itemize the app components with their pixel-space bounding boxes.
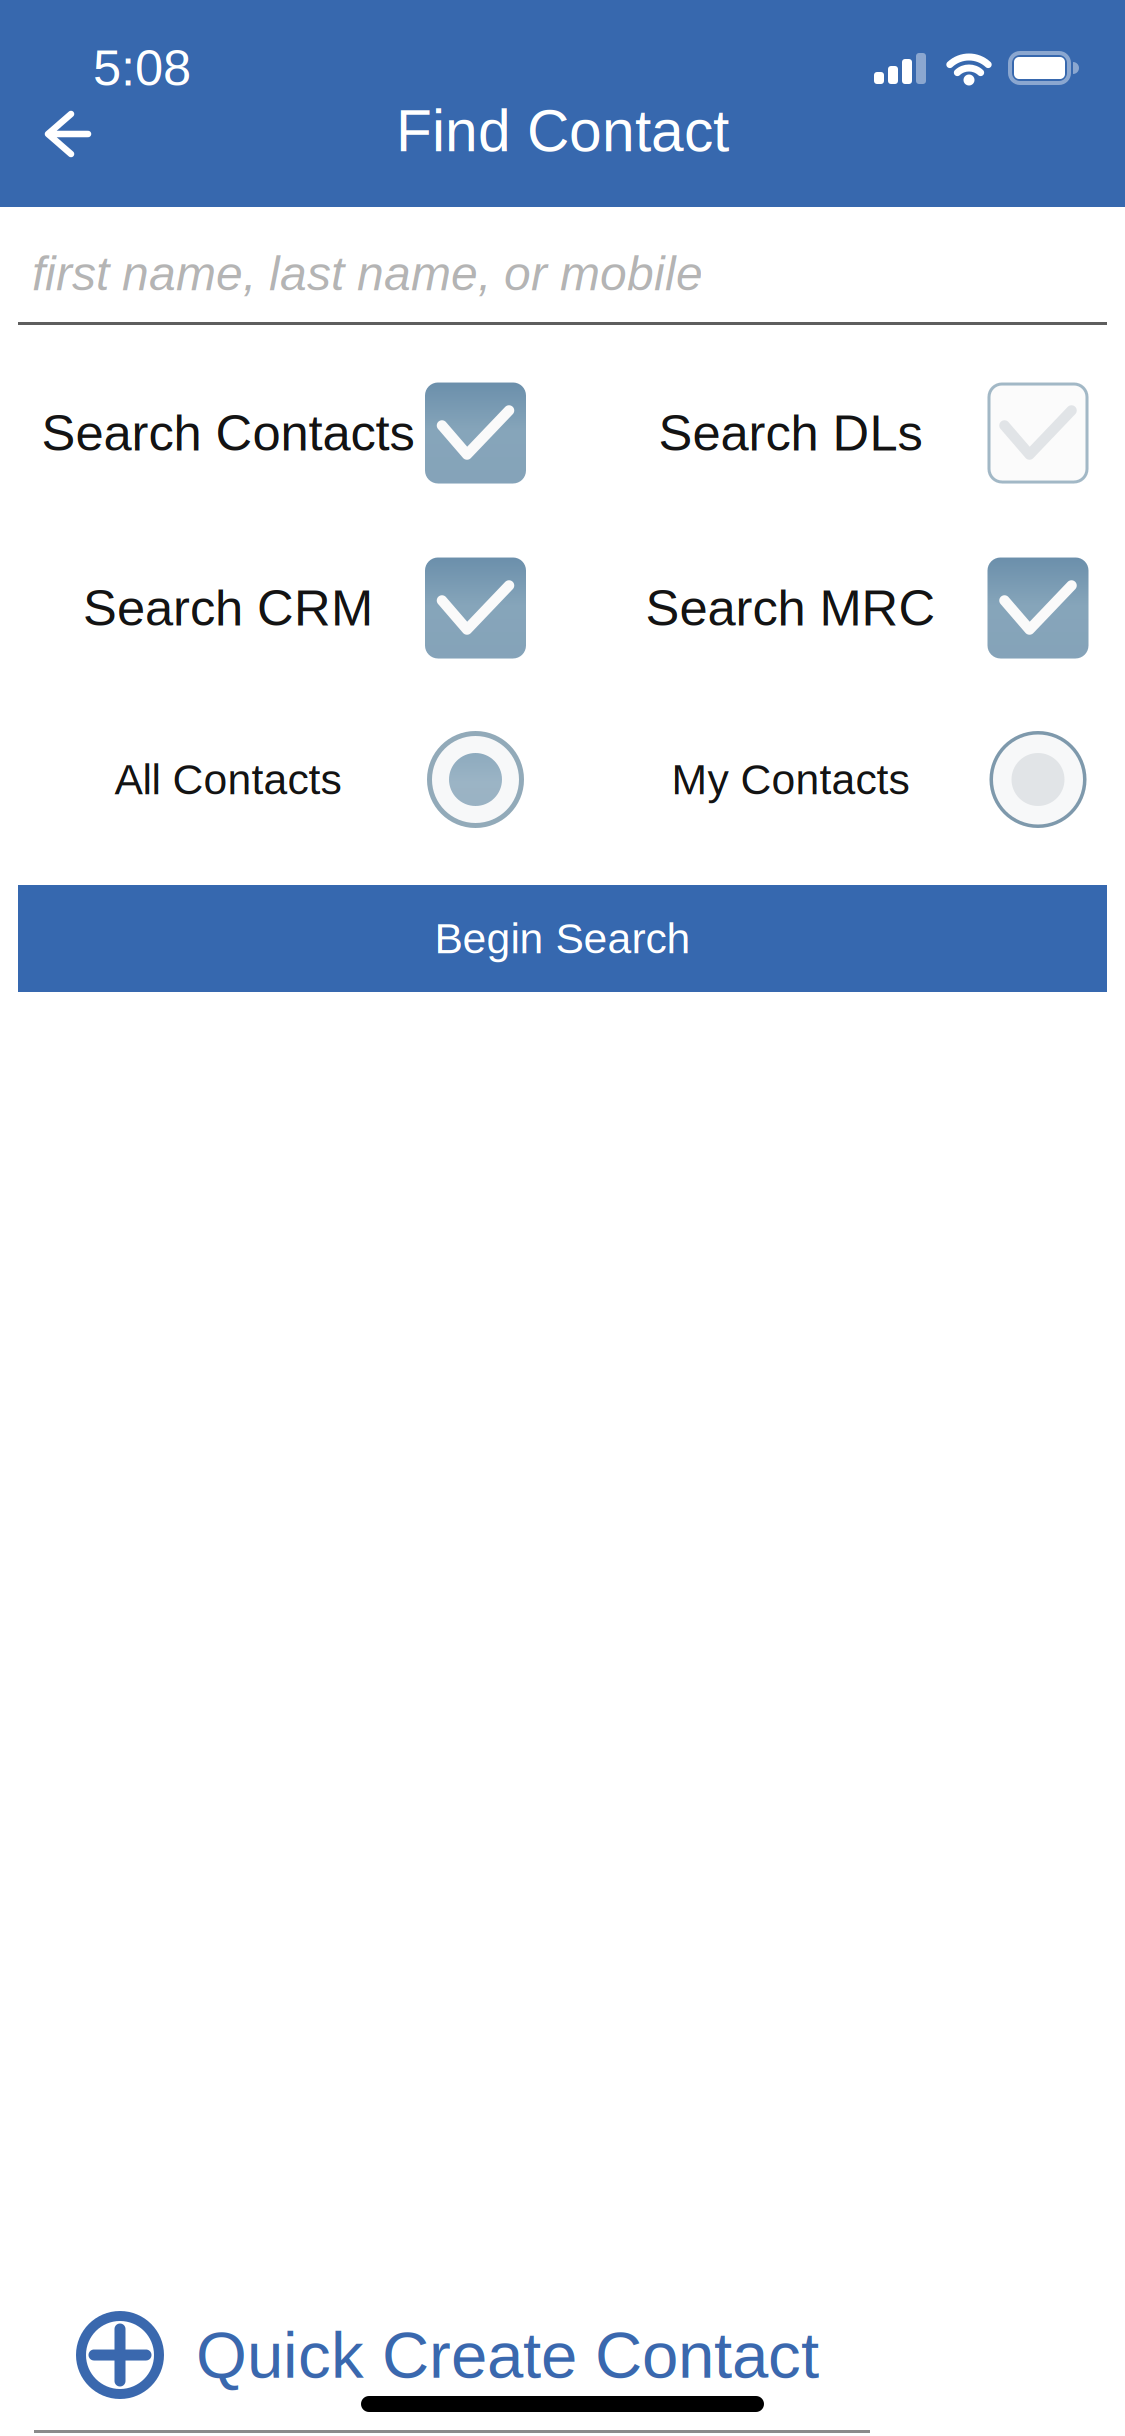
button[interactable]: Search MRC: [562, 541, 1125, 675]
button[interactable]: All Contacts: [0, 675, 562, 884]
staticText: Search DLs: [658, 405, 922, 461]
staticText: All Contacts: [114, 756, 341, 803]
staticText: Begin Search: [434, 915, 690, 962]
button[interactable]: Begin Search: [18, 885, 1107, 992]
staticText: Quick Create Contact: [196, 2318, 819, 2391]
staticText: 5:08: [93, 40, 191, 96]
staticText: first name, last name, or mobile: [32, 247, 703, 300]
button[interactable]: My Contacts: [562, 675, 1125, 884]
button[interactable]: Search CRM: [0, 541, 562, 675]
button[interactable]: Search DLs: [562, 325, 1125, 541]
staticText: Search CRM: [83, 580, 373, 636]
staticText: Search Contacts: [41, 405, 414, 461]
button[interactable]: Quick Create Contact: [0, 2299, 1125, 2411]
button[interactable]: Back: [0, 94, 122, 168]
staticText: Find Contact: [396, 98, 729, 164]
staticText: My Contacts: [671, 756, 909, 803]
button[interactable]: Search Contacts: [0, 325, 562, 541]
staticText: Search MRC: [645, 580, 935, 636]
